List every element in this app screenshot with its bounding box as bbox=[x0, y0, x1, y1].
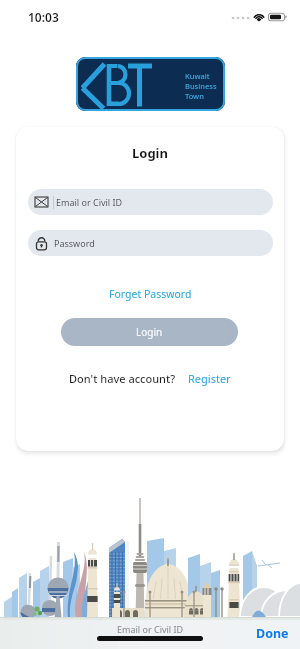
staticText: 10:03 bbox=[28, 9, 59, 25]
button[interactable]: Password bbox=[28, 230, 273, 256]
staticText: Town bbox=[185, 91, 204, 101]
button[interactable]: Email or Civil ID bbox=[28, 189, 273, 215]
staticText: Login bbox=[136, 325, 163, 339]
staticText: Email or Civil ID bbox=[56, 196, 123, 208]
staticText: Business bbox=[185, 81, 217, 91]
button[interactable]: Done bbox=[256, 625, 289, 642]
button[interactable]: Kuwait bbox=[76, 57, 225, 111]
staticText: Password bbox=[54, 237, 95, 249]
button[interactable]: Forget Password bbox=[109, 287, 192, 301]
staticText: Kuwait bbox=[185, 71, 210, 81]
button[interactable]: Register bbox=[188, 371, 231, 386]
staticText: Login bbox=[132, 144, 168, 162]
button[interactable]: Login bbox=[61, 318, 238, 346]
staticText: Don't have account? bbox=[69, 371, 176, 386]
staticText: Email or Civil ID bbox=[117, 623, 184, 635]
